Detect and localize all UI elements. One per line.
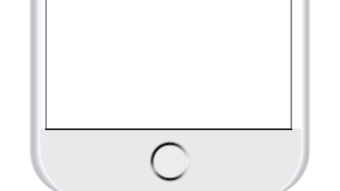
button[interactable]: Home: [0, 0, 340, 191]
